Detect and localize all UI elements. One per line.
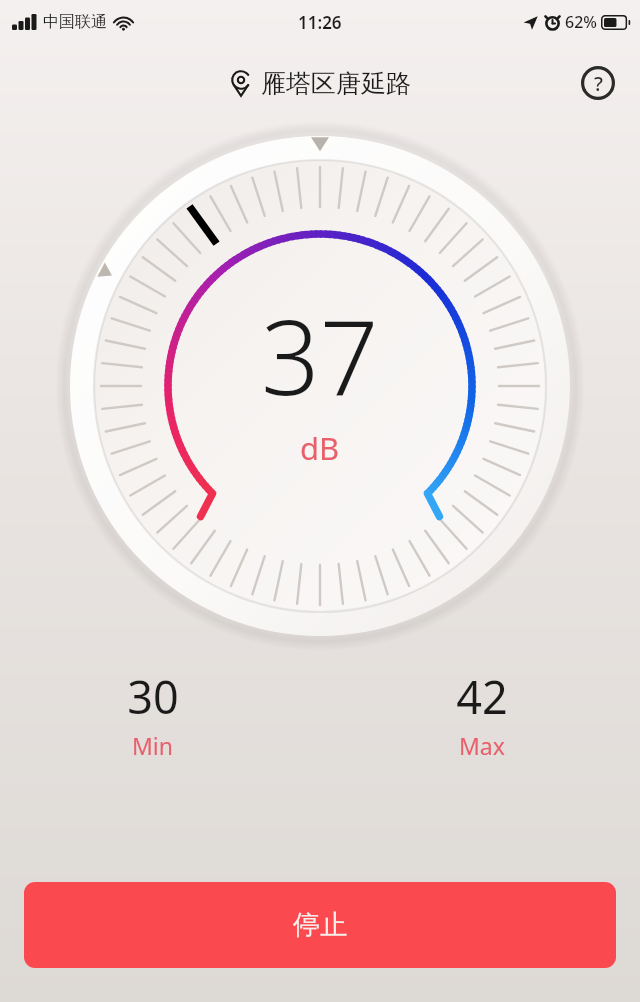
staticText: 37 xyxy=(261,285,379,425)
staticText: Max xyxy=(459,730,505,761)
staticText: ? xyxy=(594,70,603,97)
staticText: 中国联通 xyxy=(43,12,107,32)
staticText: 11:26 xyxy=(298,11,342,34)
button[interactable]: 雁塔区唐延路 xyxy=(224,64,417,103)
staticText: 停止 xyxy=(293,908,347,942)
button[interactable]: Help xyxy=(577,62,619,104)
staticText: Min xyxy=(132,730,174,761)
staticText: 62% xyxy=(565,11,597,33)
staticText: 30 xyxy=(127,666,179,727)
staticText: dB xyxy=(300,427,340,469)
button[interactable]: 停止 xyxy=(24,882,616,968)
staticText: 42 xyxy=(456,666,508,727)
staticText: 雁塔区唐延路 xyxy=(261,68,411,99)
